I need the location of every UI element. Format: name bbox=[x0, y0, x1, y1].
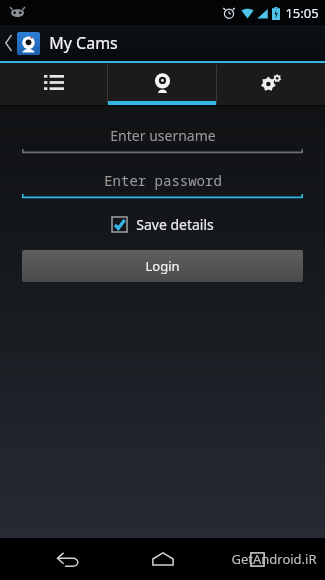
staticText: 15:05 bbox=[285, 4, 319, 22]
button[interactable]: Home bbox=[136, 538, 190, 580]
button[interactable]: Settings bbox=[217, 63, 325, 105]
staticText: My Cams bbox=[49, 32, 118, 54]
staticText: Enter username bbox=[110, 126, 216, 145]
button[interactable]: Live view bbox=[108, 63, 216, 105]
button[interactable]: Cameras list bbox=[0, 63, 107, 105]
staticText: GetAndroid.iR bbox=[231, 550, 317, 568]
button[interactable]: Login bbox=[22, 250, 303, 282]
staticText: Login bbox=[145, 257, 180, 275]
staticText: Enter password bbox=[104, 171, 222, 190]
button[interactable]: Recent apps bbox=[230, 538, 284, 580]
button[interactable]: Back bbox=[41, 538, 95, 580]
button[interactable]: Up, My Cams bbox=[0, 25, 325, 61]
button[interactable]: Enter password bbox=[22, 168, 303, 199]
button[interactable]: Enter username bbox=[22, 123, 303, 154]
staticText: Save details bbox=[136, 215, 214, 234]
button[interactable]: Save details bbox=[112, 215, 214, 234]
